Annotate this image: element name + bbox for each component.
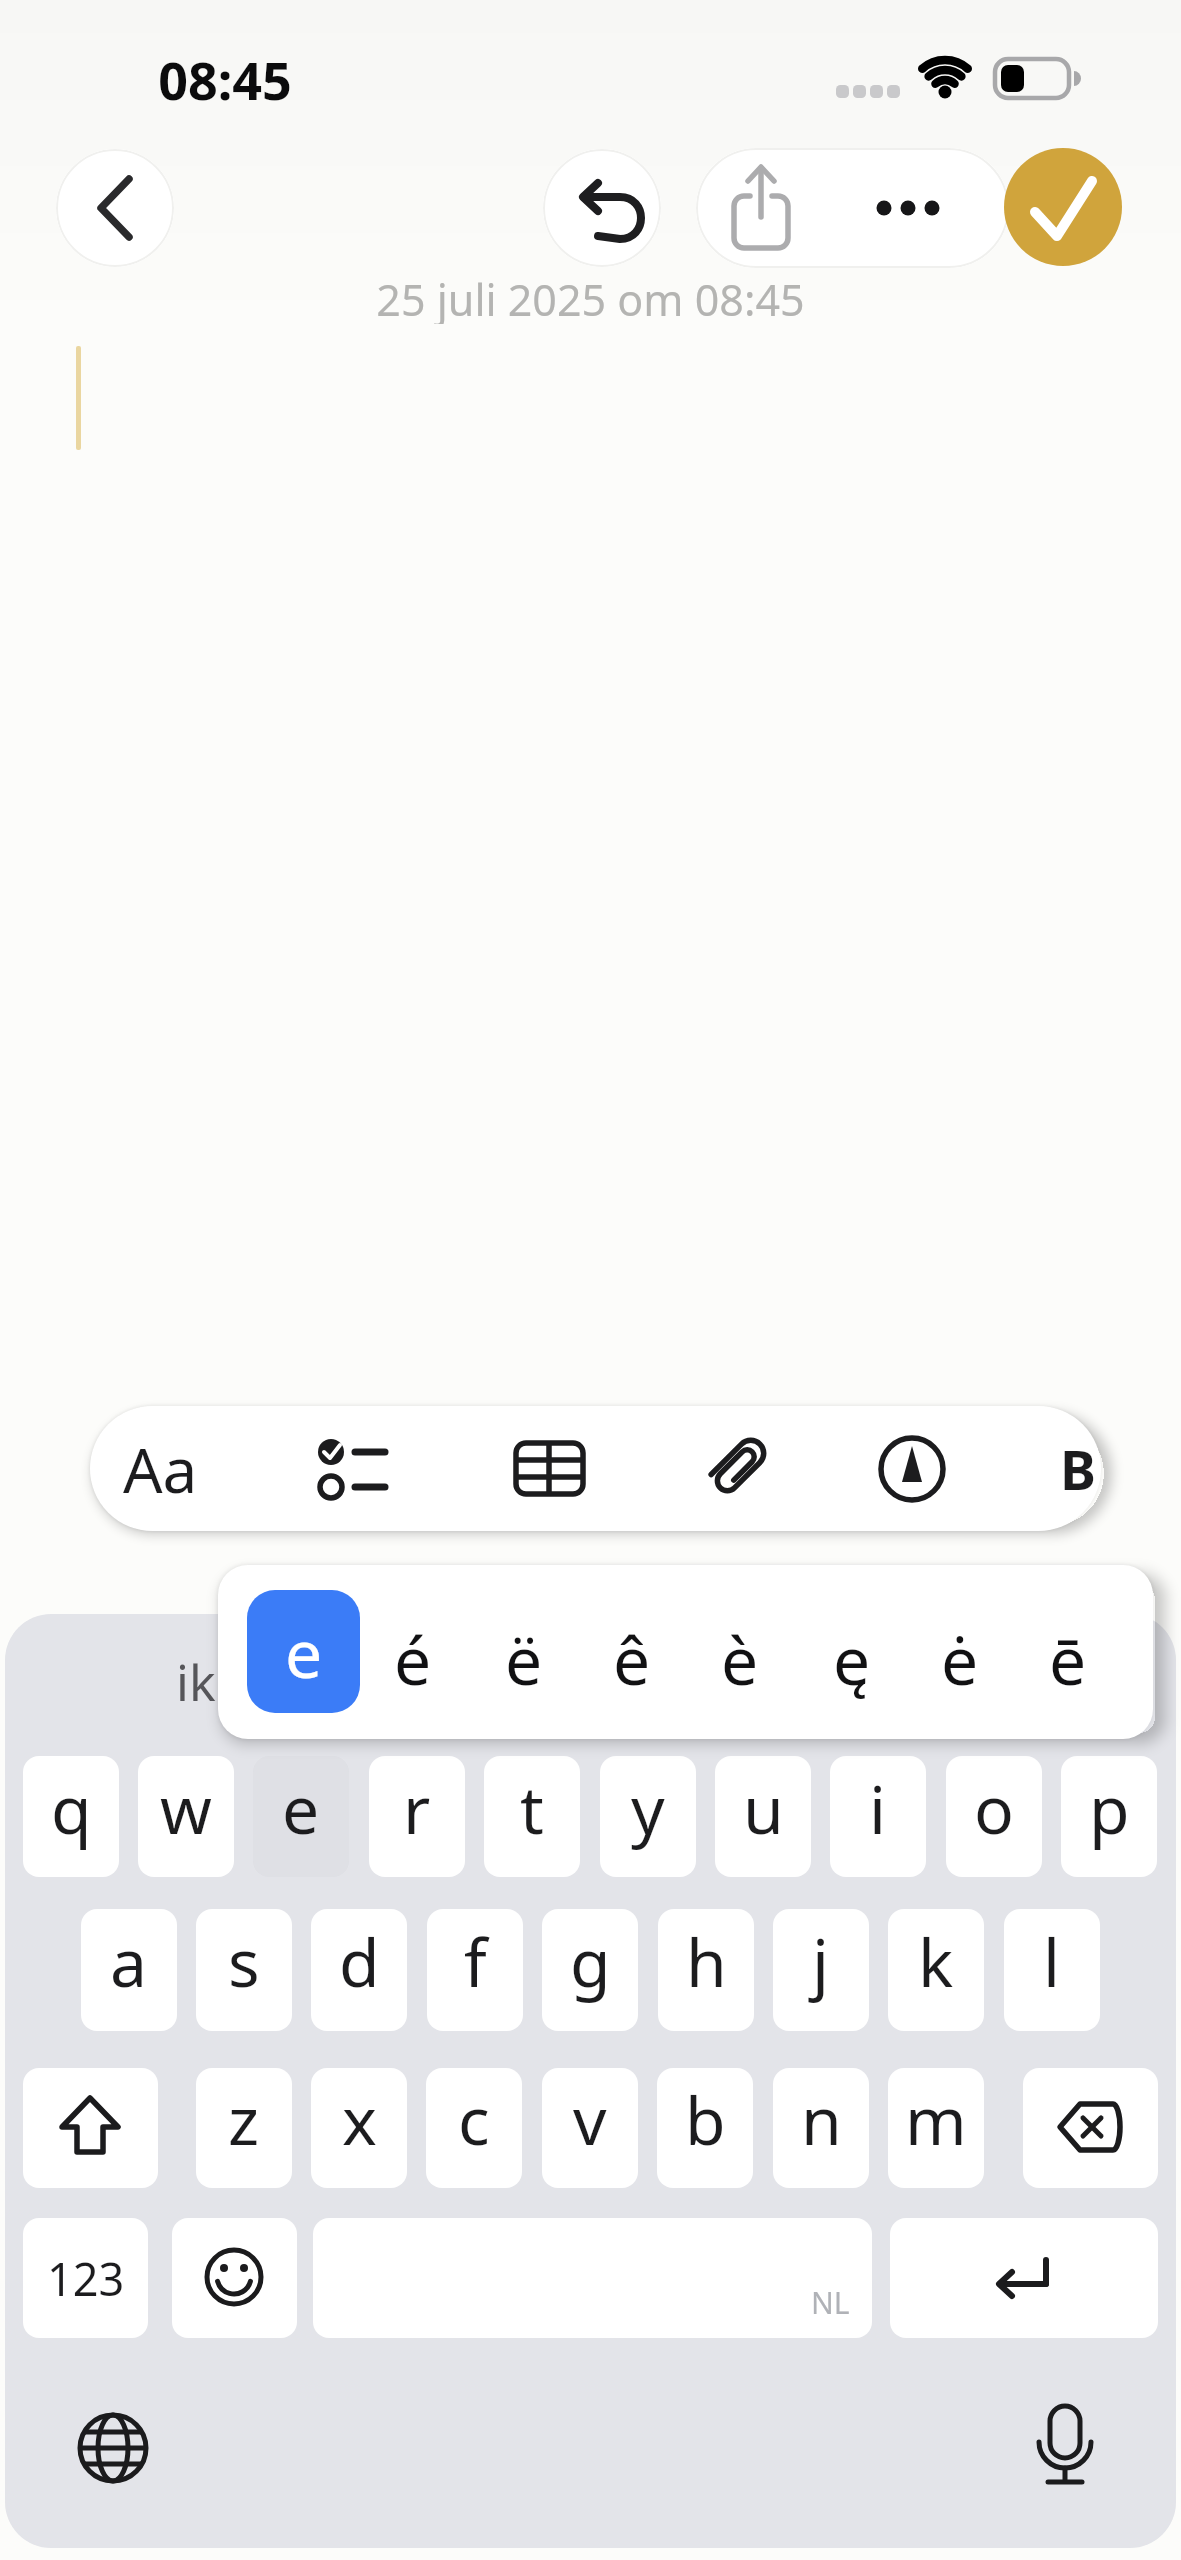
button[interactable]: k (888, 1909, 984, 2031)
button[interactable] (696, 148, 853, 268)
button[interactable]: q (23, 1756, 119, 1877)
staticText: w (160, 1763, 212, 1853)
button[interactable]: u (715, 1756, 811, 1877)
button[interactable]: è (690, 1599, 790, 1719)
staticText: d (339, 1916, 380, 2006)
button[interactable]: d (311, 1909, 407, 2031)
staticText: 08:45 (158, 44, 292, 104)
button[interactable]: o (946, 1756, 1042, 1877)
button[interactable]: z (196, 2068, 292, 2188)
staticText: s (228, 1916, 260, 2006)
button[interactable]: j (773, 1909, 869, 2031)
staticText: e (282, 1763, 320, 1853)
button[interactable]: x (311, 2068, 407, 2188)
staticText: u (743, 1763, 784, 1853)
button[interactable]: e (253, 1756, 349, 1877)
button[interactable]: ë (474, 1599, 574, 1719)
staticText: e (285, 1607, 323, 1697)
staticText: k (918, 1916, 954, 2006)
button[interactable]: n (773, 2068, 869, 2188)
staticText: o (974, 1763, 1014, 1853)
staticText: x (342, 2074, 377, 2164)
staticText: 25 juli 2025 om 08:45 (376, 270, 805, 324)
button[interactable]: y (600, 1756, 696, 1877)
button[interactable]: c (426, 2068, 522, 2188)
staticText: b (685, 2074, 726, 2164)
button[interactable]: i (830, 1756, 926, 1877)
button[interactable]: e (247, 1590, 360, 1713)
button[interactable]: é (363, 1599, 463, 1719)
button[interactable]: l (1004, 1909, 1100, 2031)
staticText: l (1043, 1916, 1061, 2006)
button[interactable] (313, 2218, 872, 2338)
button[interactable] (1023, 2068, 1158, 2188)
staticText: 123 (47, 2248, 125, 2309)
staticText: v (573, 2074, 607, 2164)
button[interactable] (489, 1406, 609, 1531)
staticText: j (812, 1916, 830, 2006)
button[interactable]: h (658, 1909, 754, 2031)
button[interactable]: v (542, 2068, 638, 2188)
staticText: ę (833, 1614, 871, 1704)
button[interactable]: 123 (23, 2218, 148, 2338)
button[interactable]: r (369, 1756, 465, 1877)
button[interactable] (293, 1406, 413, 1531)
staticText: B (1060, 1432, 1096, 1506)
button[interactable]: p (1061, 1756, 1157, 1877)
button[interactable]: ê (582, 1599, 682, 1719)
staticText: h (686, 1916, 727, 2006)
button[interactable] (1015, 2395, 1115, 2495)
button[interactable]: ē (1018, 1599, 1118, 1719)
button[interactable]: s (196, 1909, 292, 2031)
staticText: è (721, 1614, 759, 1704)
button[interactable] (1004, 148, 1122, 266)
staticText: i (869, 1763, 887, 1853)
button[interactable] (890, 2218, 1158, 2338)
staticText: y (631, 1763, 665, 1853)
button[interactable] (678, 1406, 798, 1531)
staticText: Aa (123, 1427, 198, 1511)
staticText: t (520, 1763, 544, 1853)
button[interactable]: g (542, 1909, 638, 2031)
button[interactable] (852, 1406, 972, 1531)
button[interactable] (63, 2398, 163, 2498)
staticText: z (228, 2074, 260, 2164)
button[interactable]: b (657, 2068, 753, 2188)
button[interactable]: ę (802, 1599, 902, 1719)
staticText: ik (176, 1648, 216, 1712)
staticText: c (458, 2074, 490, 2164)
staticText: p (1089, 1763, 1130, 1853)
button[interactable]: w (138, 1756, 234, 1877)
staticText: a (110, 1916, 148, 2006)
staticText: n (801, 2074, 842, 2164)
staticText: NL (811, 2282, 850, 2322)
staticText: m (905, 2074, 967, 2164)
button[interactable]: Aa (100, 1406, 220, 1531)
staticText: q (51, 1763, 92, 1853)
button[interactable]: ė (910, 1599, 1010, 1719)
button[interactable] (56, 149, 174, 267)
button[interactable]: m (888, 2068, 984, 2188)
button[interactable]: a (81, 1909, 177, 2031)
button[interactable]: ik (116, 1648, 276, 1712)
staticText: r (403, 1763, 431, 1853)
staticText: f (464, 1916, 487, 2006)
button[interactable] (172, 2218, 297, 2338)
button[interactable]: B (1038, 1406, 1118, 1531)
staticText: ē (1049, 1614, 1087, 1704)
button[interactable] (543, 149, 661, 267)
button[interactable]: t (484, 1756, 580, 1877)
staticText: ė (941, 1614, 979, 1704)
button[interactable] (853, 148, 1009, 268)
staticText: g (570, 1916, 611, 2006)
button[interactable]: f (427, 1909, 523, 2031)
button[interactable] (23, 2068, 158, 2188)
staticText: ë (505, 1614, 543, 1704)
staticText: é (394, 1614, 432, 1704)
staticText: ê (613, 1614, 651, 1704)
